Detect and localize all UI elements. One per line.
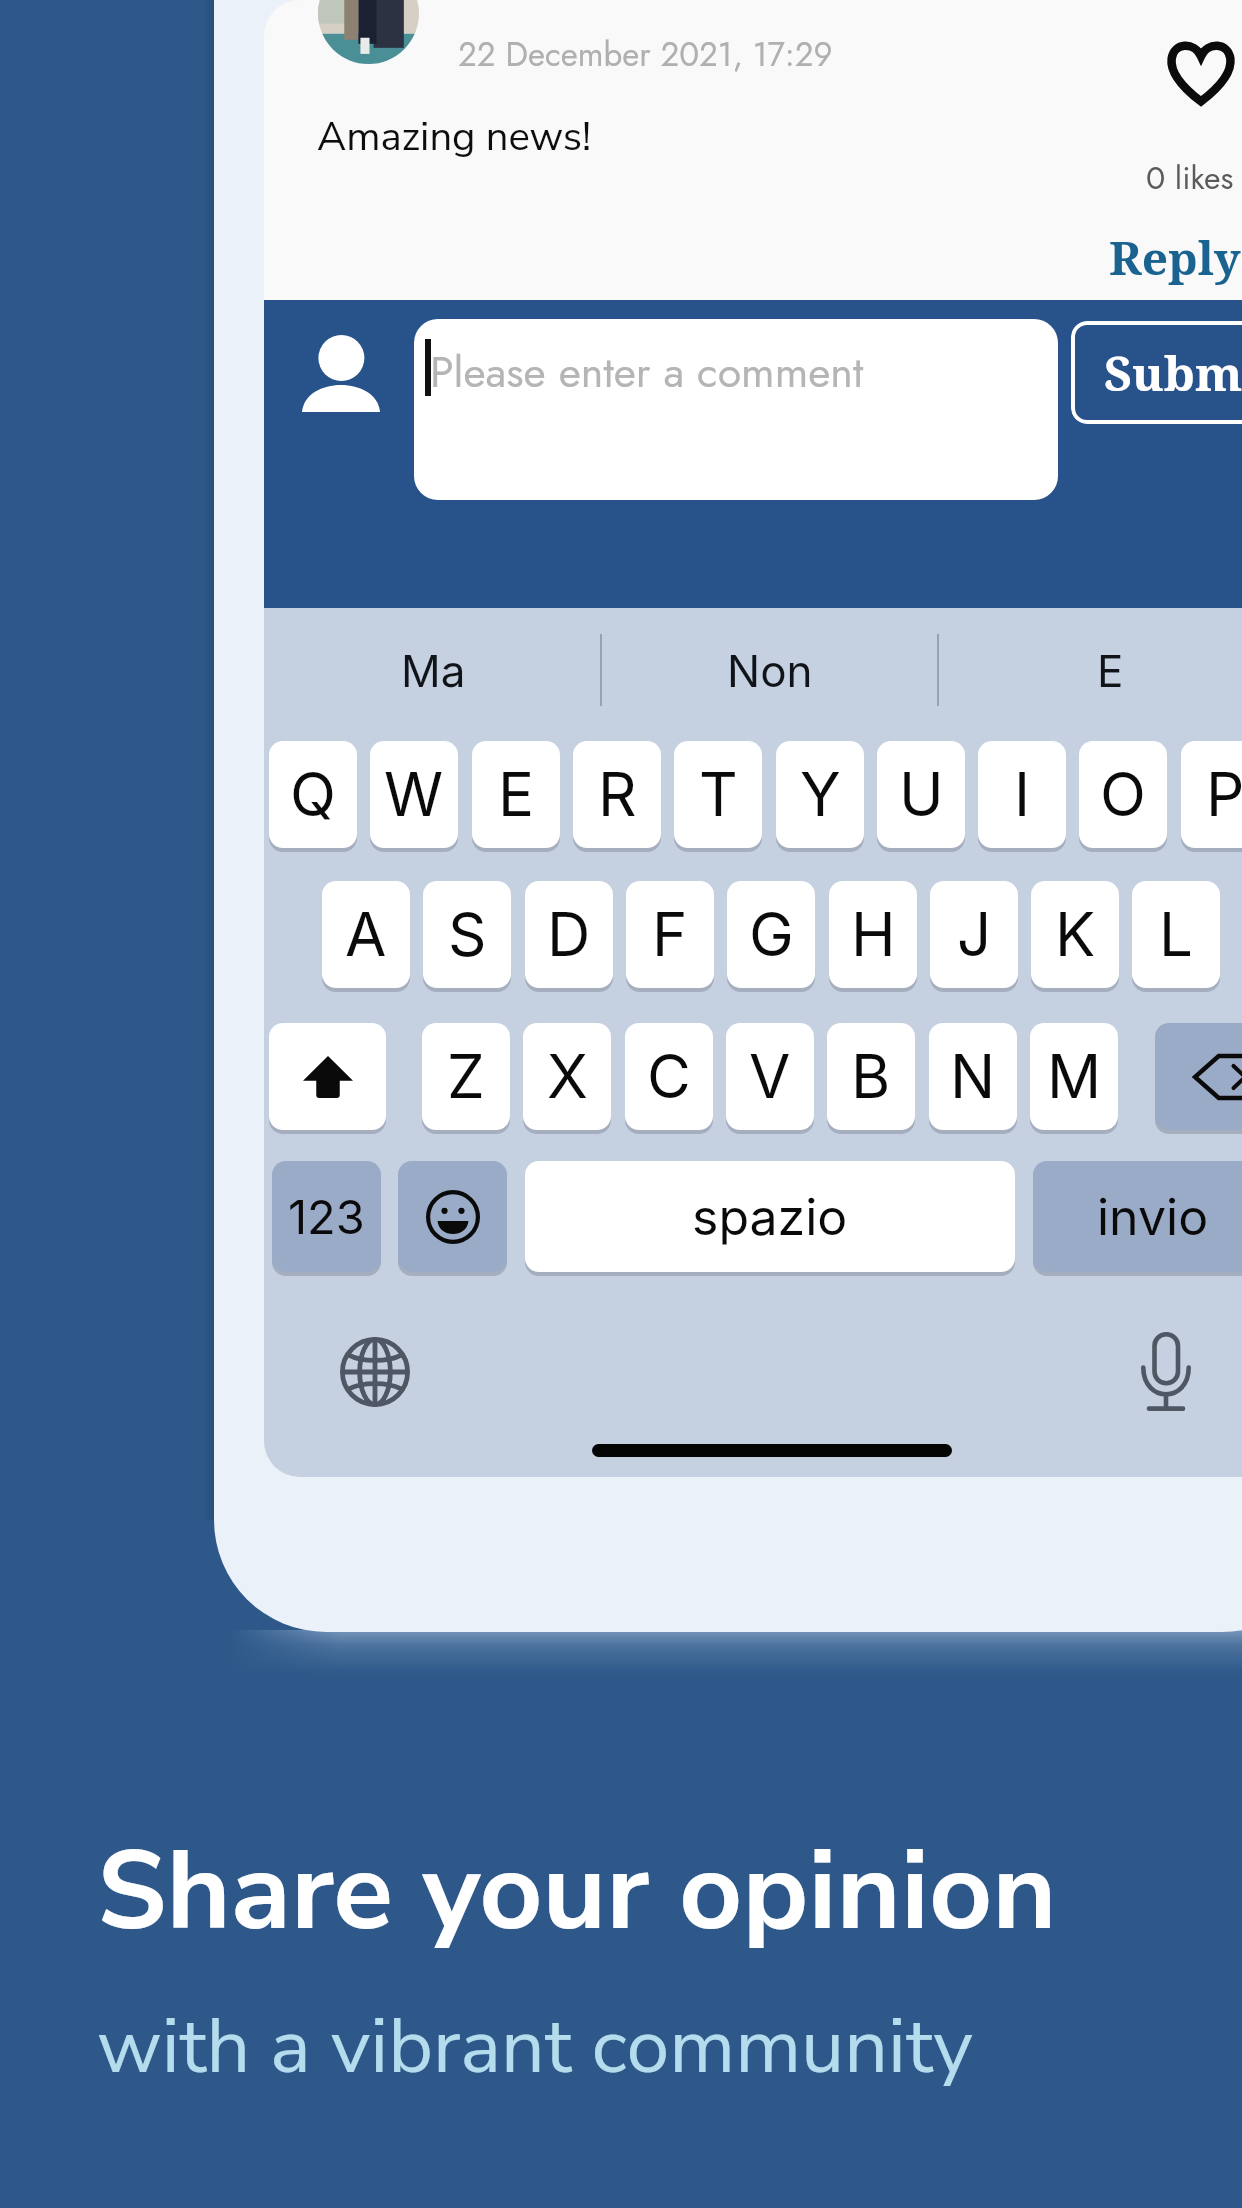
staticText: J <box>957 898 992 971</box>
button[interactable]: U <box>877 741 965 848</box>
staticText: X <box>547 1040 588 1113</box>
button[interactable]: K <box>1031 881 1119 988</box>
staticText: G <box>749 898 794 971</box>
button[interactable]: Emoji <box>398 1161 507 1272</box>
button[interactable]: spazio <box>525 1161 1015 1272</box>
staticText: M <box>1047 1040 1102 1113</box>
staticText: Share your opinion <box>97 1817 1057 1967</box>
staticText: L <box>1159 898 1193 971</box>
button[interactable]: Non <box>660 634 880 706</box>
staticText: E <box>1097 644 1124 697</box>
staticText: Z <box>447 1040 485 1113</box>
staticText: P <box>1206 758 1242 831</box>
button[interactable]: invio <box>1033 1161 1242 1272</box>
button[interactable]: Submit <box>1071 321 1242 424</box>
button[interactable]: T <box>674 741 762 848</box>
staticText: invio <box>1097 1187 1209 1247</box>
button[interactable]: P <box>1181 741 1242 848</box>
staticText: Reply <box>1109 226 1241 289</box>
staticText: H <box>851 898 896 971</box>
staticText: B <box>851 1040 891 1113</box>
button[interactable]: Ma <box>323 634 543 706</box>
button[interactable]: L <box>1132 881 1220 988</box>
button[interactable]: Voice input <box>1141 1332 1191 1412</box>
staticText: Ma <box>401 644 466 697</box>
button[interactable]: Shift <box>269 1023 386 1130</box>
button[interactable]: R <box>573 741 661 848</box>
button[interactable]: Z <box>422 1023 510 1130</box>
staticText: E <box>498 758 535 831</box>
button[interactable]: Please enter a comment <box>414 319 1058 500</box>
staticText: S <box>448 898 487 971</box>
button[interactable]: Reply <box>1109 226 1241 289</box>
staticText: N <box>950 1040 996 1113</box>
staticText: with a vibrant community <box>97 1994 973 2099</box>
button[interactable]: Q <box>269 741 357 848</box>
staticText: Please enter a comment <box>430 341 864 403</box>
staticText: C <box>647 1040 691 1113</box>
button[interactable]: E <box>1000 634 1220 706</box>
staticText: D <box>547 898 591 971</box>
button[interactable]: Backspace <box>1155 1023 1242 1130</box>
button[interactable]: J <box>930 881 1018 988</box>
button[interactable]: Y <box>776 741 864 848</box>
button[interactable]: Like <box>1151 22 1242 122</box>
button[interactable]: O <box>1079 741 1167 848</box>
staticText: 22 December 2021, 17:29 <box>458 31 833 79</box>
button[interactable]: 123 <box>272 1161 381 1272</box>
button[interactable]: V <box>726 1023 814 1130</box>
button[interactable]: H <box>829 881 917 988</box>
staticText: 123 <box>288 1188 365 1245</box>
button[interactable]: S <box>423 881 511 988</box>
other: Backspace <box>1193 1054 1242 1100</box>
button[interactable]: X <box>523 1023 611 1130</box>
staticText: 0 likes <box>1146 155 1234 201</box>
staticText: U <box>899 758 944 831</box>
staticText: Non <box>727 644 813 697</box>
other: Shift <box>303 1056 353 1098</box>
staticText: O <box>1100 758 1146 831</box>
staticText: K <box>1055 898 1096 971</box>
button[interactable]: F <box>626 881 714 988</box>
staticText: A <box>345 898 387 971</box>
staticText: T <box>699 758 738 831</box>
staticText: Amazing news! <box>317 110 592 165</box>
button[interactable]: N <box>929 1023 1017 1130</box>
button[interactable]: A <box>322 881 410 988</box>
staticText: V <box>749 1040 791 1113</box>
staticText: I <box>1014 758 1031 831</box>
staticText: Q <box>290 758 336 831</box>
button[interactable]: E <box>472 741 560 848</box>
staticText: Submit <box>1104 340 1242 405</box>
staticText: W <box>384 758 444 831</box>
button[interactable]: W <box>370 741 458 848</box>
button[interactable]: G <box>727 881 815 988</box>
button[interactable]: B <box>827 1023 915 1130</box>
staticText: Y <box>800 758 841 831</box>
button[interactable]: I <box>978 741 1066 848</box>
staticText: R <box>598 758 637 831</box>
button[interactable]: M <box>1030 1023 1118 1130</box>
staticText: F <box>652 898 688 971</box>
button[interactable]: D <box>525 881 613 988</box>
staticText: spazio <box>692 1187 848 1247</box>
button[interactable]: Change keyboard language <box>340 1337 410 1407</box>
other: Emoji <box>426 1190 480 1244</box>
button[interactable]: C <box>625 1023 713 1130</box>
